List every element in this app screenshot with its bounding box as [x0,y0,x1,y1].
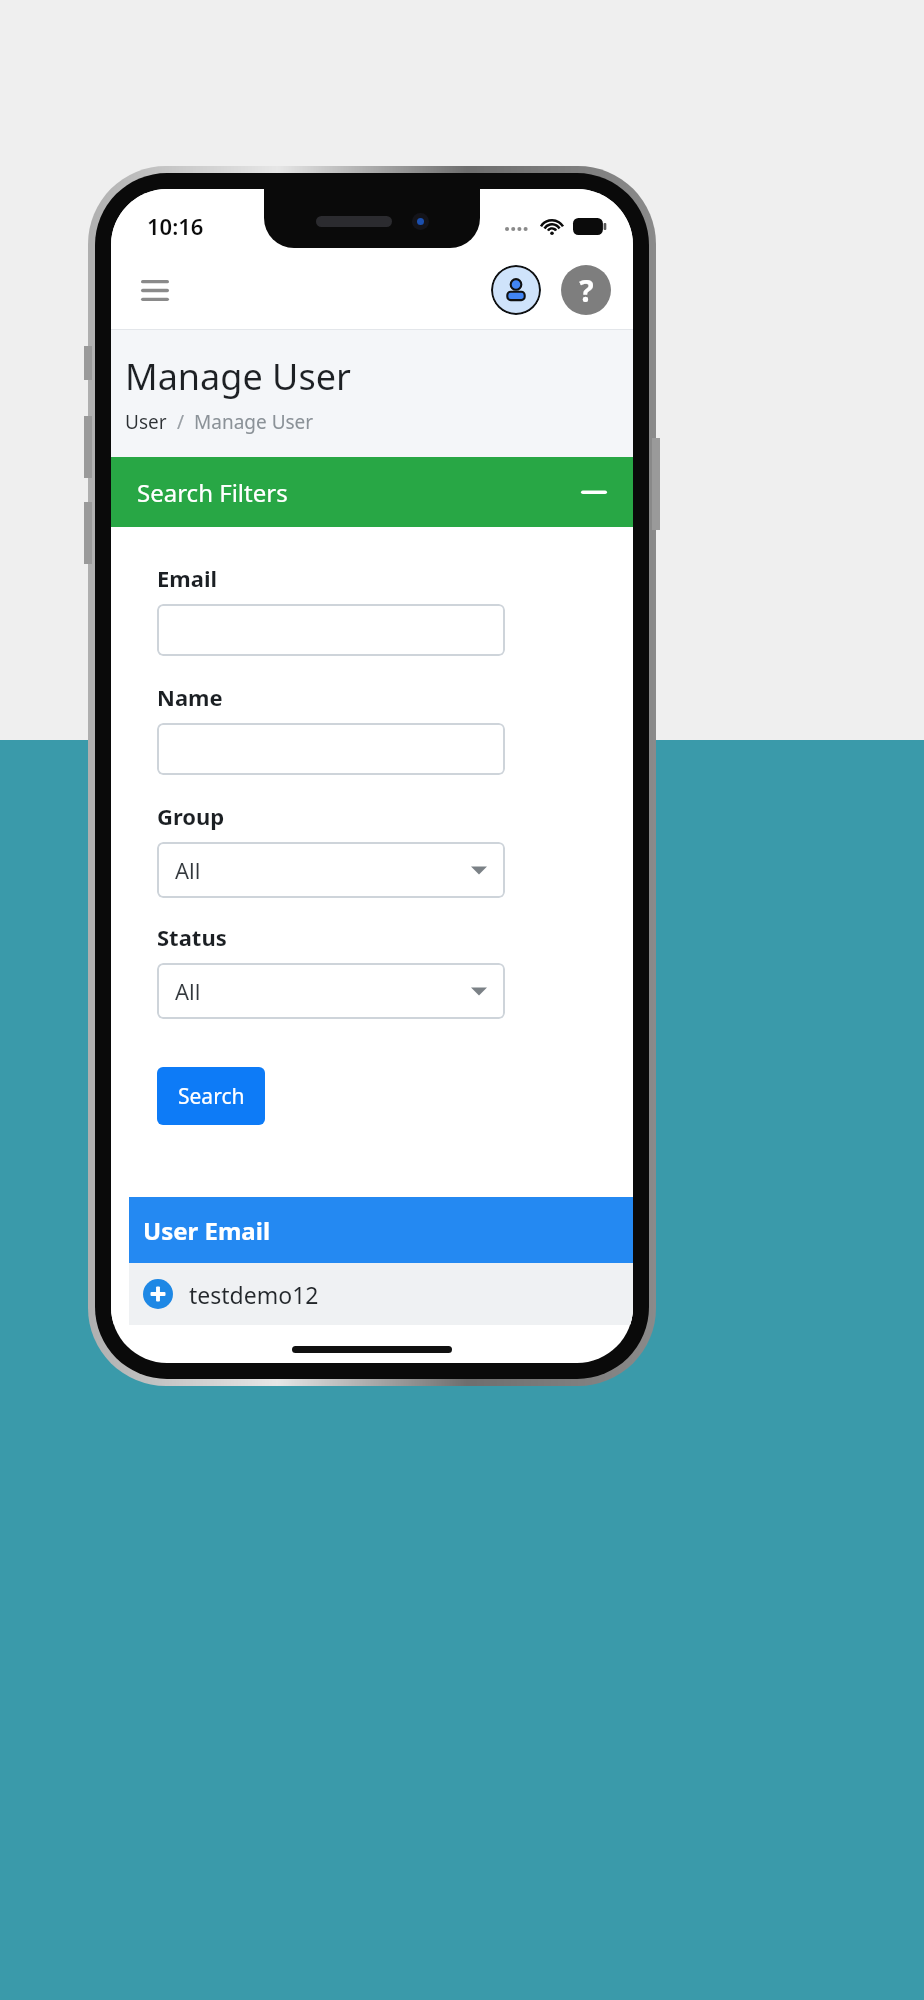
button[interactable]: Search Filters [111,457,633,527]
staticText: Email [157,563,218,593]
button[interactable] [157,723,505,775]
staticText: ? [579,270,594,311]
staticText: Name [157,682,223,712]
staticText: Manage User [125,352,351,401]
button[interactable]: User Email [129,1197,633,1263]
staticText: All [175,855,201,885]
button[interactable]: All [157,842,505,898]
button[interactable] [157,604,505,656]
staticText: / [167,409,194,435]
staticText: Group [157,801,225,831]
button[interactable]: Search [157,1067,265,1125]
button[interactable]: Menu [133,268,177,312]
staticText: Status [157,922,227,952]
staticText: Search [178,1082,245,1111]
button[interactable]: Help [561,265,611,315]
staticText: testdemo12 [189,1279,319,1310]
button[interactable]: All [157,963,505,1019]
button[interactable]: Account [491,265,541,315]
staticText: All [175,976,201,1006]
staticText: Manage User [194,409,314,435]
staticText: User Email [143,1214,271,1247]
staticText: Search Filters [137,476,288,509]
staticText: User [125,409,167,435]
button[interactable]: testdemo12 [129,1263,633,1325]
staticText: 10:16 [147,211,204,241]
